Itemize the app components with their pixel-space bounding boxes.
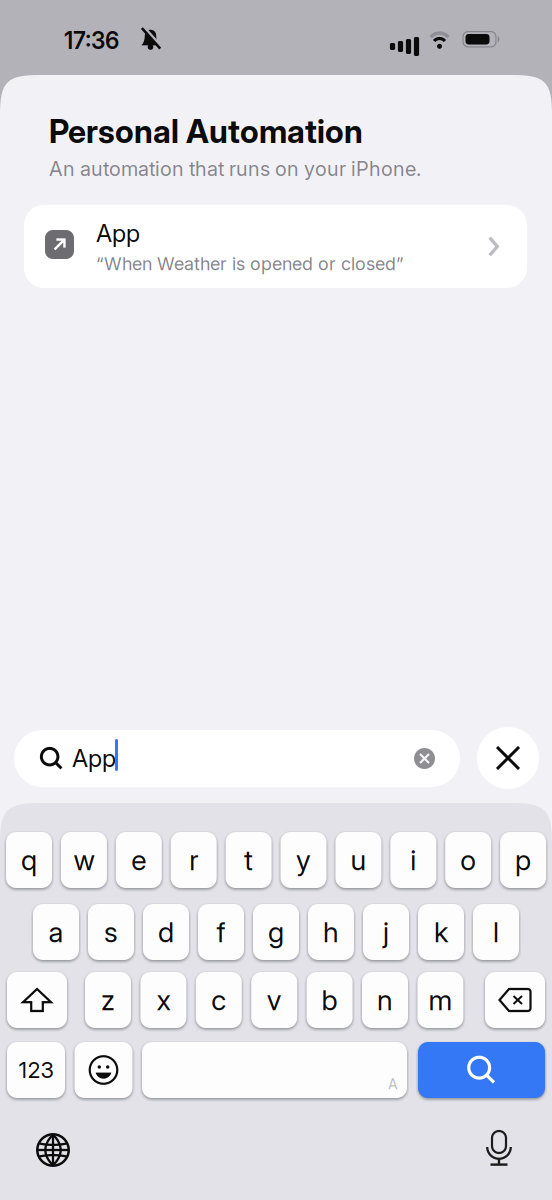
button[interactable]: Delete bbox=[485, 972, 545, 1028]
button[interactable]: Emoji bbox=[74, 1042, 132, 1098]
staticText: f bbox=[216, 915, 225, 948]
button[interactable]: Shift bbox=[7, 972, 67, 1028]
button[interactable]: y bbox=[280, 832, 326, 888]
button[interactable]: c bbox=[196, 972, 242, 1028]
staticText: s bbox=[104, 915, 118, 948]
button[interactable]: q bbox=[6, 832, 52, 888]
button[interactable]: Close bbox=[477, 727, 539, 789]
button[interactable]: Numbers bbox=[7, 1042, 65, 1098]
button[interactable]: f bbox=[198, 904, 244, 960]
staticText: q bbox=[21, 843, 37, 876]
staticText: y bbox=[296, 843, 311, 876]
button[interactable]: Space bbox=[142, 1042, 407, 1098]
button[interactable]: u bbox=[335, 832, 381, 888]
staticText: Personal Automation bbox=[49, 112, 363, 151]
button[interactable]: h bbox=[308, 904, 354, 960]
staticText: z bbox=[101, 983, 115, 1016]
staticText: v bbox=[267, 983, 282, 1016]
staticText: c bbox=[211, 983, 226, 1016]
button[interactable]: x bbox=[140, 972, 186, 1028]
staticText: A bbox=[388, 1076, 398, 1092]
staticText: b bbox=[322, 983, 338, 1016]
button[interactable]: r bbox=[171, 832, 217, 888]
button[interactable]: i bbox=[390, 832, 436, 888]
button[interactable]: e bbox=[116, 832, 162, 888]
staticText: i bbox=[410, 843, 416, 876]
staticText: o bbox=[460, 843, 476, 876]
staticText: d bbox=[158, 915, 174, 948]
button[interactable]: w bbox=[61, 832, 107, 888]
staticText: w bbox=[73, 843, 94, 876]
button[interactable]: p bbox=[500, 832, 546, 888]
staticText: App bbox=[72, 744, 116, 772]
staticText: g bbox=[268, 915, 284, 948]
button[interactable]: g bbox=[253, 904, 299, 960]
button[interactable]: o bbox=[445, 832, 491, 888]
staticText: x bbox=[156, 983, 170, 1016]
staticText: r bbox=[189, 843, 198, 876]
staticText: j bbox=[383, 915, 389, 948]
button[interactable]: Clear text bbox=[414, 748, 435, 769]
staticText: t bbox=[244, 843, 253, 876]
staticText: m bbox=[428, 983, 452, 1016]
staticText: k bbox=[434, 915, 448, 948]
button[interactable]: Search bbox=[418, 1042, 545, 1098]
button[interactable]: m bbox=[417, 972, 463, 1028]
button[interactable]: n bbox=[362, 972, 408, 1028]
staticText: “When Weather is opened or closed” bbox=[96, 253, 404, 274]
button[interactable]: z bbox=[85, 972, 131, 1028]
button[interactable]: k bbox=[418, 904, 464, 960]
button[interactable]: j bbox=[363, 904, 409, 960]
staticText: l bbox=[493, 915, 499, 948]
button[interactable]: Dictation bbox=[487, 1131, 511, 1167]
button[interactable]: Next keyboard bbox=[36, 1133, 70, 1167]
staticText: p bbox=[515, 843, 531, 876]
button[interactable]: Search bbox=[14, 730, 460, 787]
staticText: n bbox=[377, 983, 393, 1016]
button[interactable]: l bbox=[473, 904, 519, 960]
button[interactable]: s bbox=[88, 904, 134, 960]
staticText: h bbox=[323, 915, 339, 948]
staticText: 123 bbox=[18, 1057, 53, 1083]
staticText: An automation that runs on your iPhone. bbox=[49, 157, 421, 181]
staticText: App bbox=[96, 219, 140, 247]
staticText: a bbox=[48, 915, 63, 948]
button[interactable]: v bbox=[251, 972, 297, 1028]
button[interactable]: t bbox=[226, 832, 272, 888]
button[interactable]: App bbox=[24, 205, 527, 288]
staticText: 17:36 bbox=[64, 27, 119, 54]
staticText: u bbox=[350, 843, 366, 876]
button[interactable]: a bbox=[33, 904, 79, 960]
staticText: e bbox=[131, 843, 146, 876]
button[interactable]: b bbox=[307, 972, 353, 1028]
button[interactable]: d bbox=[143, 904, 189, 960]
